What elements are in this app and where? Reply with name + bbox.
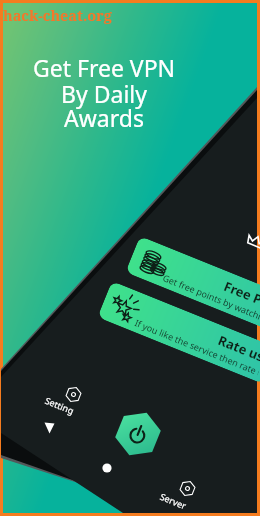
- button[interactable]: Premium: [245, 232, 260, 252]
- button[interactable]: Server: [158, 490, 189, 512]
- button[interactable]: Setting: [43, 394, 76, 416]
- staticText: Free Points: [221, 277, 260, 321]
- staticText: hack-cheat.org: [3, 5, 112, 25]
- button[interactable]: Settings: [64, 385, 83, 404]
- staticText: By Daily: [0, 78, 231, 109]
- staticText: Get Free VPN: [0, 52, 231, 83]
- staticText: Server: [158, 490, 189, 512]
- staticText: Get free points by watching video: [161, 271, 260, 332]
- button[interactable]: Free Points: [125, 236, 260, 339]
- staticText: Rate us: [216, 331, 260, 366]
- staticText: Awards: [0, 102, 231, 133]
- staticText: If you like the service then rate us: [133, 316, 260, 377]
- button[interactable]: Rate us: [97, 281, 260, 384]
- staticText: Setting: [43, 394, 76, 416]
- button[interactable]: Power: [108, 404, 168, 464]
- button[interactable]: Server: [178, 479, 197, 498]
